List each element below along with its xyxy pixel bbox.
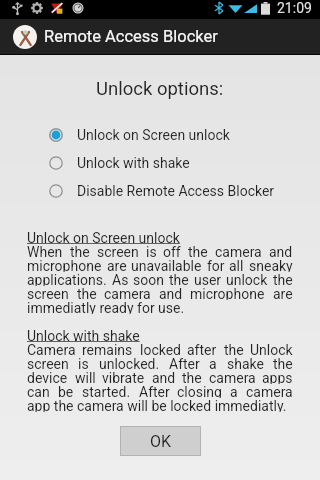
staticText: When xyxy=(27,244,63,258)
staticText: a xyxy=(230,384,238,398)
staticText: Disable Remote Access Blocker xyxy=(77,183,275,199)
staticText: apps xyxy=(262,370,293,384)
staticText: is xyxy=(78,356,89,370)
staticText: Unlock with shake xyxy=(27,328,140,342)
staticText: Unlock options: xyxy=(96,78,224,100)
staticText: the xyxy=(77,286,97,300)
staticText: unlock xyxy=(226,272,268,286)
button[interactable]: Unlock with shake xyxy=(0,149,320,177)
staticText: and xyxy=(152,370,176,384)
staticText: can xyxy=(27,384,50,398)
staticText: started. xyxy=(82,384,131,398)
staticText: all xyxy=(229,258,244,272)
staticText: After xyxy=(139,384,170,398)
staticText: OK xyxy=(150,432,172,451)
staticText: locked xyxy=(140,342,181,356)
staticText: app the camera will be locked immediatly… xyxy=(27,398,287,412)
staticText: closing xyxy=(177,384,222,398)
staticText: the xyxy=(169,272,189,286)
staticText: applications. xyxy=(27,272,107,286)
button[interactable]: Unlock on Screen unlock xyxy=(0,121,320,149)
staticText: Unlock on Screen unlock xyxy=(27,230,180,244)
staticText: Unlock on Screen unlock xyxy=(77,127,230,143)
staticText: camera xyxy=(209,370,256,384)
staticText: immediatly ready for use. xyxy=(27,300,185,314)
staticText: sneaky xyxy=(249,258,293,272)
staticText: is xyxy=(146,244,157,258)
button[interactable]: Disable Remote Access Blocker xyxy=(0,177,320,205)
staticText: and xyxy=(159,286,183,300)
staticText: are xyxy=(107,258,127,272)
staticText: vibrate xyxy=(102,370,145,384)
staticText: for xyxy=(207,258,225,272)
staticText: a xyxy=(209,356,217,370)
staticText: remains xyxy=(82,342,133,356)
staticText: the xyxy=(70,244,90,258)
staticText: device xyxy=(27,370,68,384)
staticText: microphone xyxy=(190,286,265,300)
staticText: Unlock with shake xyxy=(77,155,190,171)
staticText: the xyxy=(182,370,202,384)
staticText: will xyxy=(75,370,96,384)
staticText: unlocked. xyxy=(99,356,160,370)
staticText: shake xyxy=(227,356,264,370)
button[interactable]: OK xyxy=(120,426,201,456)
staticText: off xyxy=(163,244,181,258)
staticText: 21:09 xyxy=(277,0,312,16)
staticText: are xyxy=(273,286,293,300)
staticText: soon xyxy=(133,272,164,286)
staticText: screen xyxy=(27,286,69,300)
staticText: camera xyxy=(104,286,151,300)
staticText: camera xyxy=(246,384,293,398)
staticText: screen xyxy=(97,244,139,258)
staticText: the xyxy=(273,272,293,286)
staticText: the xyxy=(224,342,244,356)
staticText: and xyxy=(269,244,293,258)
staticText: the xyxy=(188,244,208,258)
staticText: after xyxy=(187,342,217,356)
staticText: be xyxy=(58,384,74,398)
staticText: microphone xyxy=(27,258,102,272)
staticText: screen xyxy=(27,356,69,370)
staticText: Remote Access Blocker xyxy=(44,27,218,46)
staticText: unavailable xyxy=(131,258,202,272)
staticText: Unlock xyxy=(250,342,293,356)
staticText: user xyxy=(194,272,222,286)
staticText: the xyxy=(273,356,293,370)
staticText: Camera xyxy=(27,342,76,356)
staticText: As xyxy=(112,272,129,286)
staticText: camera xyxy=(215,244,262,258)
staticText: After xyxy=(169,356,200,370)
